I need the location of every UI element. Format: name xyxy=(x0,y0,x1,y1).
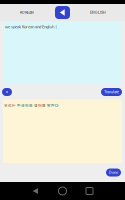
button[interactable]: Home xyxy=(49,182,76,200)
button[interactable]: Done xyxy=(106,163,125,182)
button[interactable]: Back xyxy=(22,182,49,200)
staticText: ENGLISH xyxy=(90,10,106,15)
staticText: Done xyxy=(109,170,118,175)
button[interactable]: KOREAN xyxy=(0,4,54,21)
staticText: we speak Korean and English | xyxy=(5,24,57,29)
button[interactable]: Speak xyxy=(0,84,12,99)
button[interactable]: Swap languages xyxy=(54,4,71,21)
staticText: 우리는 한국어와 영어를 말한다 xyxy=(4,102,59,108)
button[interactable]: ENGLISH xyxy=(71,4,125,21)
staticText: Translate xyxy=(104,90,119,94)
button[interactable]: Translate xyxy=(101,84,125,99)
button[interactable]: Recents xyxy=(76,182,103,200)
staticText: KOREAN xyxy=(20,10,34,15)
